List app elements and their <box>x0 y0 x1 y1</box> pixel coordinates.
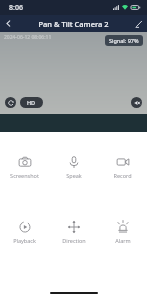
staticText: 8:06 <box>9 3 23 13</box>
button[interactable]: Mute <box>131 97 142 108</box>
button[interactable]: Refresh stream <box>5 97 16 108</box>
button[interactable]: Screenshot <box>0 153 49 181</box>
button[interactable]: HD <box>20 97 43 108</box>
staticText: Record <box>113 172 132 179</box>
staticText: Pan & Tilt Camera 2 <box>38 19 109 29</box>
staticText: Screenshot <box>10 172 39 179</box>
button[interactable]: Direction <box>49 218 98 246</box>
button[interactable]: Playback <box>0 218 49 246</box>
button[interactable]: Edit settings <box>130 15 147 32</box>
button[interactable]: Speak <box>49 153 98 181</box>
staticText: Direction <box>62 237 86 244</box>
staticText: Speak <box>66 172 82 179</box>
staticText: HD <box>27 99 36 106</box>
staticText: 2024-06-12 08:06:11 <box>4 34 52 41</box>
staticText: Playback <box>13 237 36 244</box>
button[interactable]: Record <box>98 153 147 181</box>
staticText: Alarm <box>115 237 131 244</box>
button[interactable]: Signal: 97% <box>105 35 143 46</box>
button[interactable]: Back <box>0 15 17 32</box>
button[interactable]: Alarm <box>98 218 147 246</box>
staticText: Signal: 97% <box>109 37 139 44</box>
